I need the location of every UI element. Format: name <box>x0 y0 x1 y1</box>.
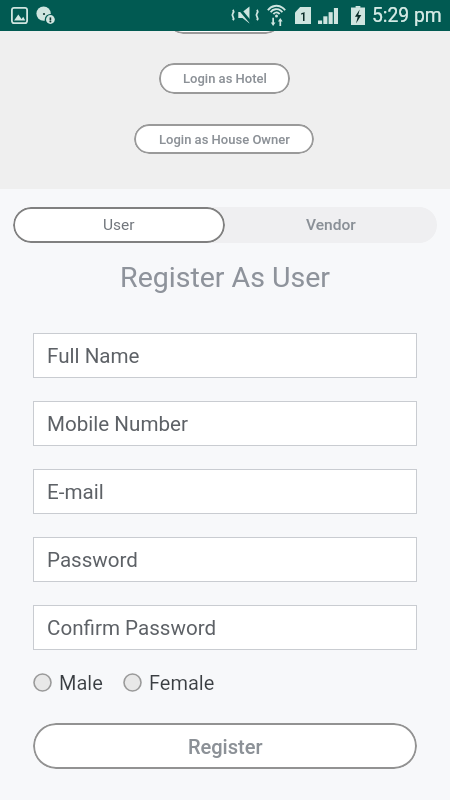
button[interactable]: Register <box>33 723 417 769</box>
staticText: E-mail <box>47 480 104 504</box>
staticText: Register <box>188 735 263 758</box>
button[interactable]: Login as House Owner <box>134 124 314 154</box>
staticText: Password <box>47 548 138 572</box>
button[interactable]: Confirm Password <box>33 605 417 650</box>
button[interactable]: Password <box>33 537 417 582</box>
button[interactable]: Login as Hotel <box>159 63 290 94</box>
staticText: Vendor <box>306 216 356 234</box>
staticText: Male <box>59 671 103 694</box>
staticText: Register As User <box>0 261 450 294</box>
staticText: 5:29 pm <box>372 4 442 27</box>
staticText: Login as Hotel <box>183 71 267 86</box>
button[interactable]: E-mail <box>33 469 417 514</box>
button[interactable]: User <box>13 207 225 243</box>
staticText: Mobile Number <box>47 412 188 436</box>
button[interactable]: Female <box>123 671 215 694</box>
button[interactable] <box>168 4 281 34</box>
staticText: Female <box>149 671 215 694</box>
button[interactable]: Mobile Number <box>33 401 417 446</box>
button[interactable]: Full Name <box>33 333 417 378</box>
staticText: Confirm Password <box>47 616 217 640</box>
staticText: 1 <box>300 10 307 24</box>
button[interactable]: Male <box>33 671 103 694</box>
staticText: Full Name <box>47 344 140 368</box>
button[interactable]: Vendor <box>225 207 437 243</box>
staticText: User <box>103 216 135 234</box>
staticText: Login as House Owner <box>159 132 290 147</box>
